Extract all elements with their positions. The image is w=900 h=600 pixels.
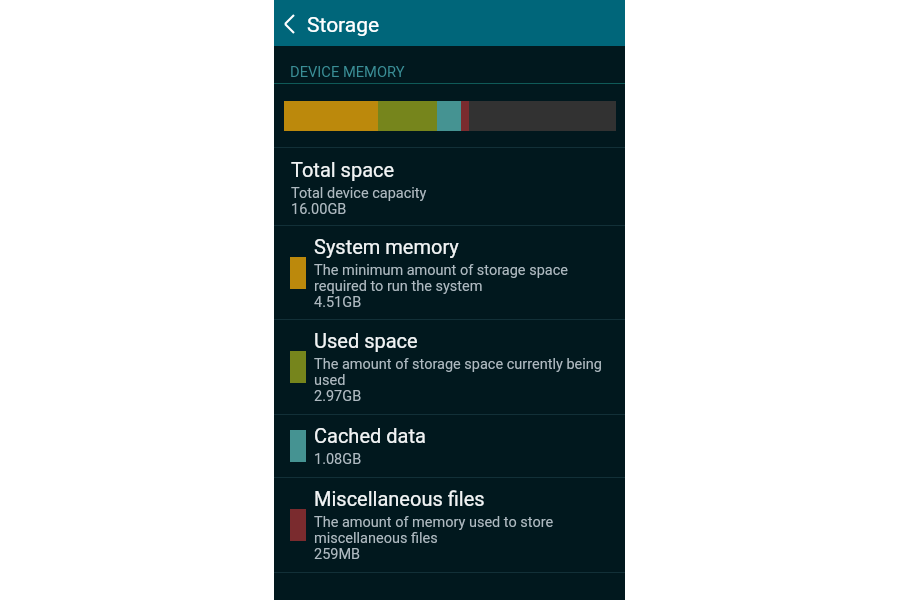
- staticText: 16.00GB: [291, 201, 347, 217]
- button[interactable]: Back: [274, 0, 306, 46]
- staticText: System memory: [314, 236, 459, 259]
- staticText: Cached data: [314, 425, 426, 448]
- staticText: 1.08GB: [314, 451, 362, 467]
- staticText: DEVICE MEMORY: [290, 63, 405, 80]
- staticText: Storage: [307, 13, 380, 38]
- staticText: Miscellaneous files: [314, 488, 485, 511]
- staticText: The amount of memory used to store misce…: [314, 514, 609, 546]
- button[interactable]: Used space: [274, 320, 625, 414]
- staticText: 2.97GB: [314, 388, 362, 404]
- staticText: Used space: [314, 330, 418, 353]
- staticText: The minimum amount of storage space requ…: [314, 262, 609, 294]
- button[interactable]: Cached data: [274, 415, 625, 477]
- staticText: 259MB: [314, 546, 361, 562]
- button[interactable]: System memory: [274, 226, 625, 319]
- staticText: Total device capacity: [291, 185, 427, 201]
- button[interactable]: Storage: [306, 0, 380, 46]
- button[interactable]: Total space: [274, 148, 625, 225]
- staticText: The amount of storage space currently be…: [314, 356, 609, 388]
- button[interactable]: Miscellaneous files: [274, 478, 625, 572]
- staticText: 4.51GB: [314, 294, 362, 310]
- staticText: Total space: [291, 159, 395, 182]
